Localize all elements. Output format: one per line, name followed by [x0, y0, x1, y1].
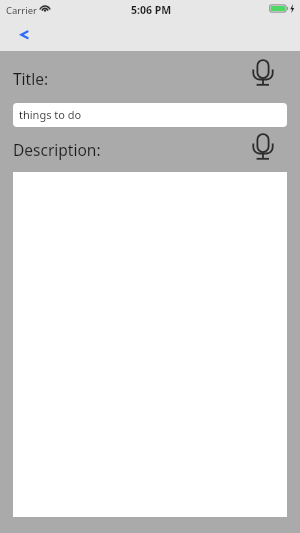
button[interactable]: things to do [13, 103, 287, 127]
staticText: things to do [19, 107, 82, 122]
button[interactable]: Dictate title [251, 58, 275, 87]
staticText: Carrier [6, 4, 37, 17]
button[interactable]: Back [12, 25, 38, 49]
button[interactable]: Dictate description [251, 132, 275, 161]
staticText: Title: [13, 68, 49, 89]
staticText: Description: [13, 139, 101, 160]
staticText: 5:06 PM [131, 3, 172, 17]
